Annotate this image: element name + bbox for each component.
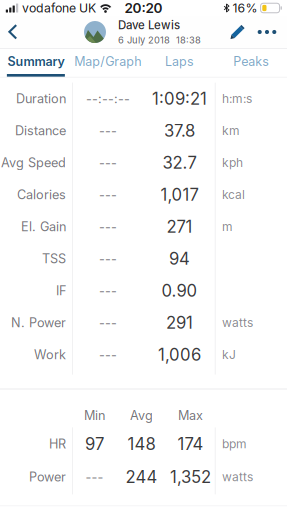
staticText: Max (178, 408, 203, 423)
staticText: 1,352 (170, 467, 211, 487)
staticText: 291 (166, 312, 193, 333)
staticText: 1,006 (158, 344, 201, 365)
button[interactable]: Peaks (215, 49, 287, 77)
staticText: Summary (7, 54, 64, 69)
staticText: 6 July 2018 18:38 (118, 34, 201, 46)
staticText: --- (99, 315, 117, 330)
staticText: Map/Graph (74, 54, 141, 69)
staticText: Distance (15, 123, 66, 138)
staticText: Dave Lewis (118, 18, 180, 32)
staticText: h:m:s (222, 91, 252, 106)
staticText: 32.7 (162, 152, 196, 173)
button[interactable]: Dave Lewis (84, 16, 201, 48)
staticText: --- (99, 123, 117, 138)
staticText: TSS (42, 251, 66, 266)
staticText: Avg Speed (1, 155, 66, 170)
staticText: N. Power (11, 315, 66, 330)
staticText: Duration (16, 91, 66, 106)
staticText: 97 (85, 434, 104, 454)
button[interactable]: Edit (225, 16, 251, 48)
staticText: --- (99, 187, 117, 202)
staticText: 244 (125, 467, 157, 487)
staticText: 271 (166, 216, 192, 237)
staticText: Avg (130, 408, 153, 423)
staticText: 94 (169, 248, 190, 269)
staticText: --- (99, 251, 117, 266)
button[interactable]: Map/Graph (72, 49, 144, 77)
staticText: --- (99, 283, 117, 298)
staticText: m (222, 219, 233, 234)
staticText: bpm (222, 437, 247, 451)
button[interactable]: Summary (0, 49, 72, 77)
button[interactable]: Laps (143, 49, 215, 77)
staticText: Work (34, 347, 66, 362)
staticText: --- (85, 469, 103, 484)
staticText: --- (99, 347, 117, 362)
staticText: Laps (165, 54, 194, 69)
staticText: Min (84, 408, 105, 423)
staticText: kph (222, 155, 243, 170)
staticText: Power (29, 469, 66, 484)
staticText: 1:09:21 (152, 88, 207, 109)
staticText: 20:20 (124, 0, 162, 16)
staticText: vodafone UK (22, 1, 96, 15)
staticText: --- (99, 219, 117, 234)
staticText: Calories (17, 187, 66, 202)
staticText: 148 (127, 434, 155, 454)
staticText: kcal (222, 187, 245, 202)
staticText: 174 (177, 434, 203, 454)
button[interactable]: More options (251, 16, 283, 48)
staticText: IF (56, 283, 66, 298)
staticText: HR (49, 436, 66, 451)
staticText: --:--:-- (86, 91, 130, 106)
staticText: El. Gain (21, 219, 66, 234)
staticText: watts (222, 315, 253, 330)
staticText: --- (99, 155, 117, 170)
staticText: 1,017 (160, 184, 198, 205)
button[interactable]: Back (1, 16, 25, 48)
staticText: Peaks (233, 54, 269, 69)
staticText: watts (222, 470, 253, 484)
staticText: 0.90 (161, 280, 197, 301)
staticText: 16% (233, 1, 258, 15)
staticText: kJ (222, 347, 236, 362)
staticText: km (222, 123, 240, 138)
staticText: 37.8 (164, 120, 195, 141)
